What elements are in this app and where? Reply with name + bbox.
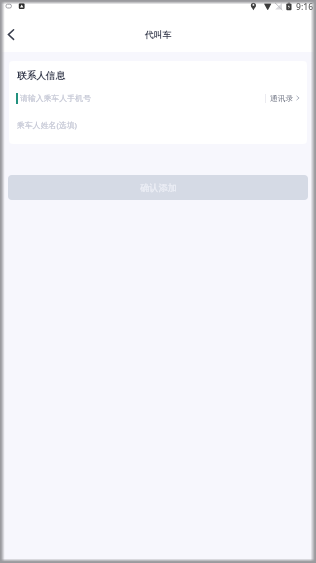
staticText: 确认添加	[140, 182, 177, 194]
staticText: 请输入乘车人手机号	[20, 93, 92, 103]
staticText: 9:16	[296, 1, 314, 13]
staticText: 代叫车	[145, 30, 172, 41]
staticText: 通讯录	[270, 93, 294, 103]
button[interactable]: Back	[0, 16, 22, 52]
button[interactable]: 通讯录	[266, 93, 301, 103]
staticText: 乘车人姓名(选填)	[17, 120, 77, 131]
staticText: 联系人信息	[17, 70, 65, 82]
